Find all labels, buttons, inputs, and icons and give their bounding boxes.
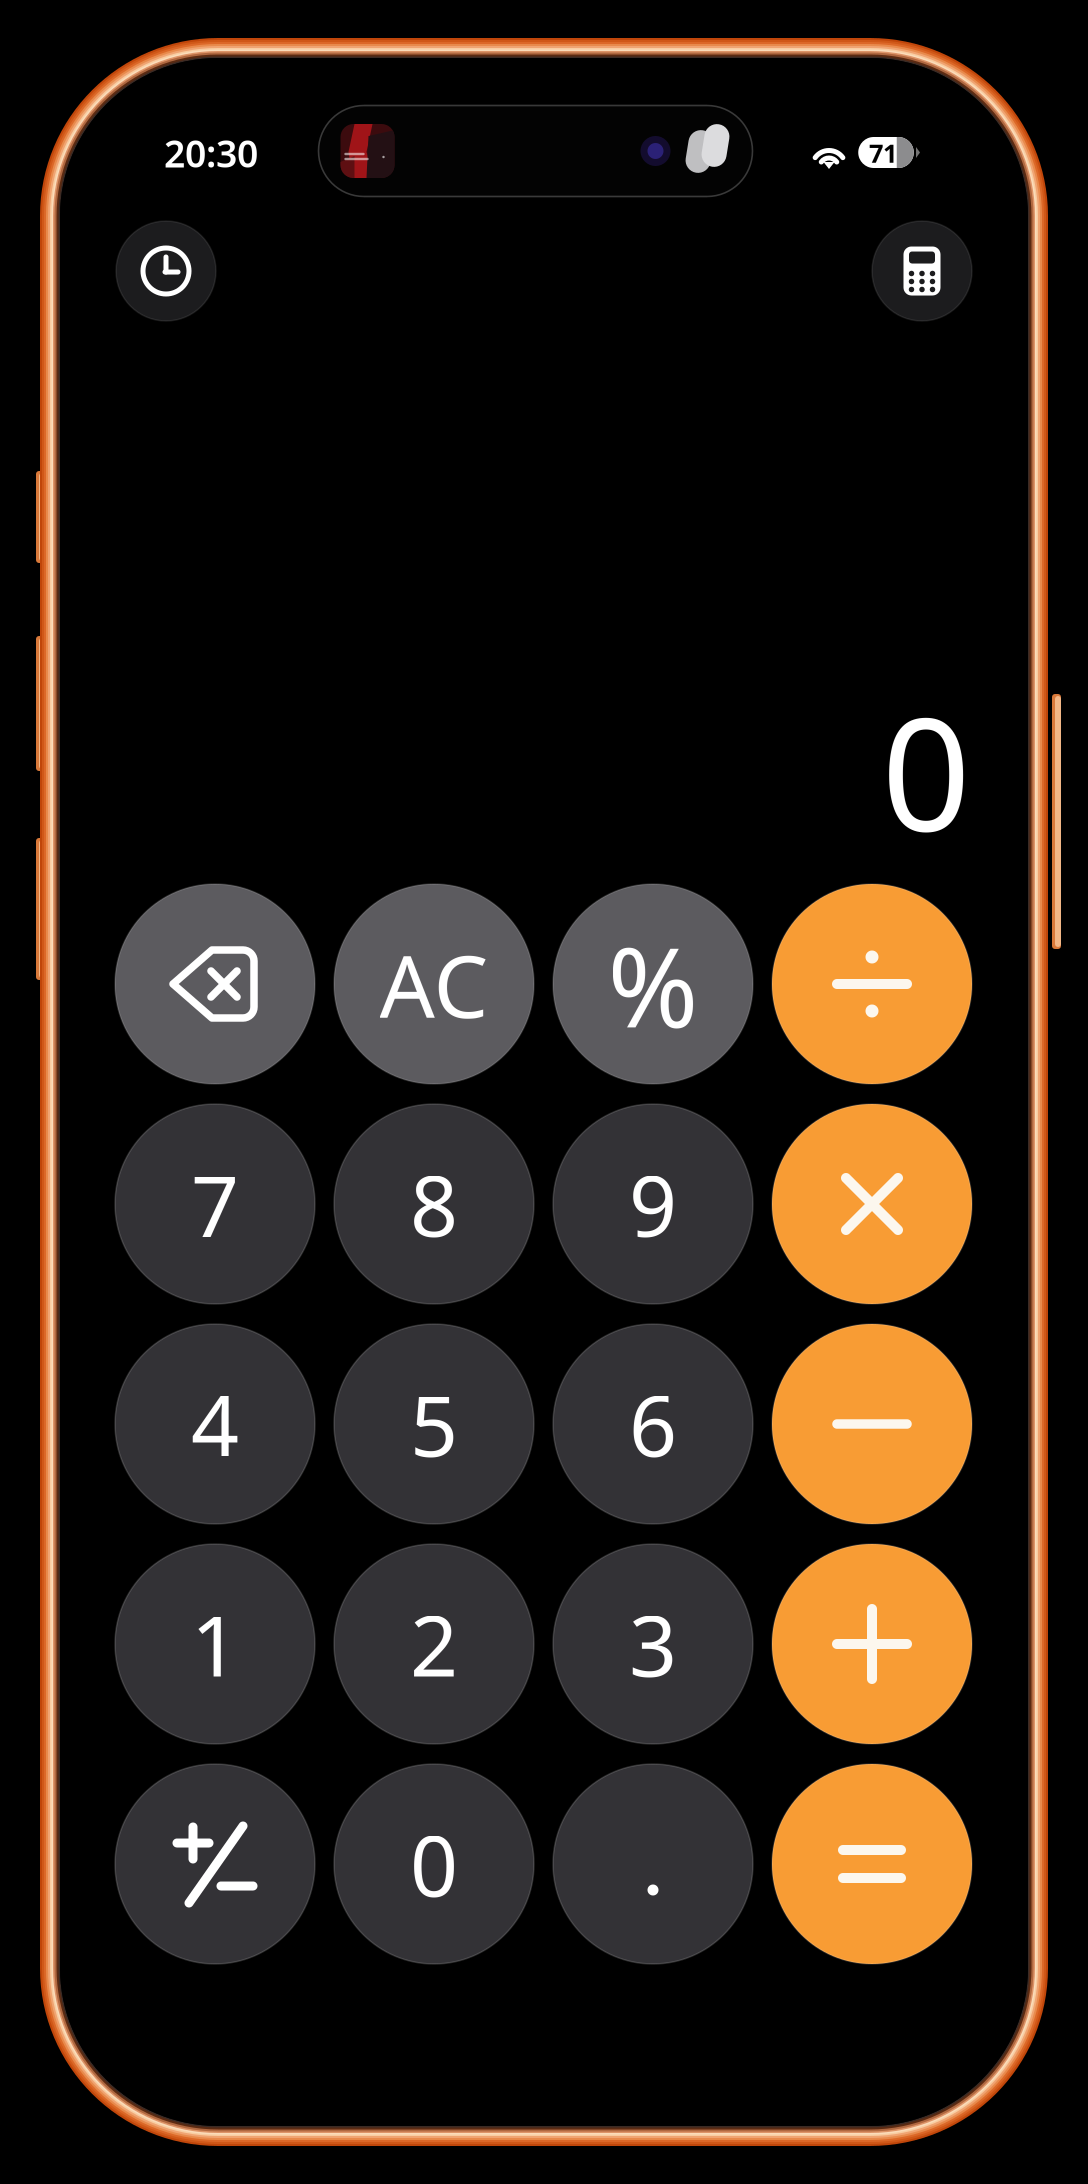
staticText: 4 [191,1368,239,1480]
button[interactable]: Subtract [772,1324,972,1524]
button[interactable]: Equals [772,1764,972,1964]
button[interactable]: % [553,884,753,1084]
staticText: AC [379,926,488,1042]
button[interactable]: 9 [553,1104,753,1304]
button[interactable]: 0 [334,1764,534,1964]
button[interactable]: 7 [115,1104,315,1304]
button[interactable]: Toggle sign [115,1764,315,1964]
staticText: 9 [629,1148,677,1260]
staticText: 71 [869,136,897,170]
staticText: % [607,912,698,1058]
button[interactable]: Multiply [772,1104,972,1304]
staticText: 0 [410,1808,458,1920]
button[interactable]: History [116,221,216,321]
staticText: 5 [410,1368,458,1480]
staticText: 7 [191,1148,239,1260]
button[interactable]: 1 [115,1544,315,1744]
button[interactable]: 4 [115,1324,315,1524]
button[interactable]: AC [334,884,534,1084]
staticText: 1 [191,1588,239,1700]
staticText: 8 [410,1148,458,1260]
staticText: 2 [410,1588,458,1700]
button[interactable]: 2 [334,1544,534,1744]
staticText: 20:30 [164,128,258,178]
button[interactable]: Divide [772,884,972,1084]
button[interactable]: 8 [334,1104,534,1304]
staticText: 3 [629,1588,677,1700]
button[interactable]: 5 [334,1324,534,1524]
staticText: 0 [881,666,970,874]
button[interactable]: 3 [553,1544,753,1744]
button[interactable]: Decimal point [553,1764,753,1964]
button[interactable]: 6 [553,1324,753,1524]
button[interactable]: Scientific calculator [872,221,972,321]
button[interactable]: Add [772,1544,972,1744]
button[interactable]: Delete [115,884,315,1084]
staticText: 6 [629,1368,677,1480]
